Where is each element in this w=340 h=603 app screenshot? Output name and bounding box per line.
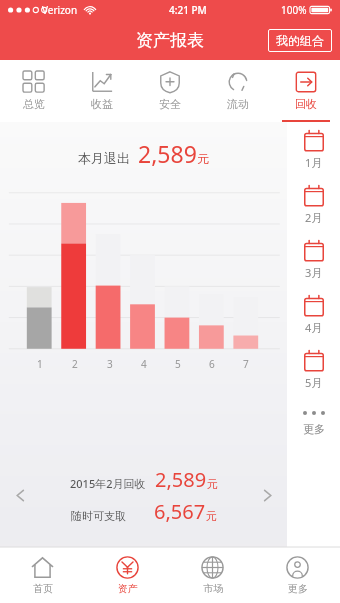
staticText: 资产报表 xyxy=(136,30,204,51)
button[interactable]: 流动 xyxy=(204,60,272,122)
button[interactable]: 资产 xyxy=(85,547,170,603)
staticText: 2015年2月回收 xyxy=(70,476,146,491)
staticText: 收益 xyxy=(91,97,113,111)
staticText: 5月 xyxy=(305,375,323,390)
staticText: 随时可支取 xyxy=(71,509,126,523)
button[interactable]: 更多 xyxy=(255,547,340,603)
button[interactable]: 4月 xyxy=(287,287,340,342)
staticText: 4月 xyxy=(305,320,323,335)
button[interactable]: 5月 xyxy=(287,342,340,397)
button[interactable]: Next month xyxy=(253,481,281,509)
staticText: 总览 xyxy=(23,97,45,111)
staticText: 本月退出 xyxy=(78,150,130,166)
button[interactable]: 1月 xyxy=(287,122,340,177)
staticText: 4 xyxy=(141,357,147,371)
staticText: 元 xyxy=(197,151,209,166)
button[interactable]: 2月 xyxy=(287,177,340,232)
staticText: 回收 xyxy=(295,97,317,111)
staticText: 2,589 xyxy=(138,138,197,169)
staticText: 6 xyxy=(209,357,215,371)
staticText: 3月 xyxy=(305,265,323,280)
staticText: 6,567 xyxy=(154,498,206,525)
staticText: 5 xyxy=(175,357,181,371)
staticText: 更多 xyxy=(288,582,308,595)
staticText: 市场 xyxy=(203,582,223,595)
staticText: 安全 xyxy=(159,97,181,111)
button[interactable]: 回收 xyxy=(272,60,340,122)
button[interactable]: 安全 xyxy=(136,60,204,122)
staticText: 3 xyxy=(107,357,113,371)
button[interactable]: 收益 xyxy=(68,60,136,122)
button[interactable]: Previous month xyxy=(6,481,34,509)
staticText: 2 xyxy=(72,357,78,371)
staticText: 我的组合 xyxy=(276,33,324,48)
staticText: Verizon xyxy=(42,3,78,17)
button[interactable]: 市场 xyxy=(170,547,255,603)
staticText: 7 xyxy=(243,357,249,371)
button[interactable]: 首页 xyxy=(0,547,85,603)
button[interactable]: 总览 xyxy=(0,60,68,122)
button[interactable]: 我的组合 xyxy=(268,29,332,52)
staticText: 2,589 xyxy=(155,466,207,493)
staticText: 100% xyxy=(281,3,307,17)
button[interactable]: 3月 xyxy=(287,232,340,287)
staticText: 1 xyxy=(37,357,43,371)
staticText: 2月 xyxy=(305,210,323,225)
staticText: 元 xyxy=(206,509,217,523)
staticText: 更多 xyxy=(303,422,325,436)
button[interactable]: 更多 xyxy=(287,397,340,449)
staticText: 资产 xyxy=(118,582,138,595)
staticText: 4:21 PM xyxy=(169,3,207,17)
staticText: 流动 xyxy=(227,97,249,111)
staticText: 1月 xyxy=(305,155,323,170)
staticText: 元 xyxy=(207,477,218,491)
staticText: 首页 xyxy=(33,582,53,595)
